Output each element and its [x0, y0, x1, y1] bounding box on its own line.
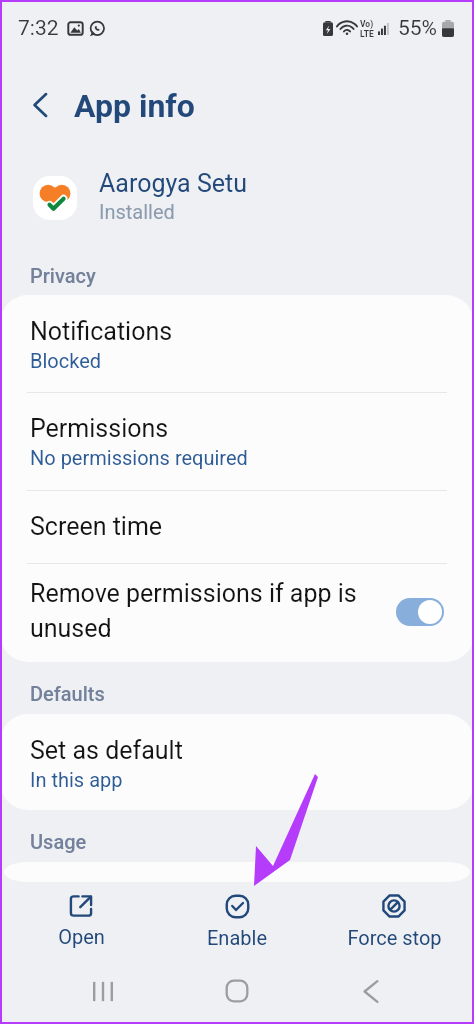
staticText: Screen time — [30, 512, 163, 541]
staticText: Blocked — [30, 349, 102, 372]
staticText: Notifications — [30, 317, 173, 346]
button[interactable]: Set as default — [0, 714, 474, 810]
staticText: Permissions — [30, 414, 169, 443]
button[interactable]: Permissions — [0, 393, 474, 490]
staticText: In this app — [30, 768, 123, 791]
staticText: Enable — [207, 926, 267, 949]
staticText: 55% — [398, 16, 437, 41]
button[interactable]: Screen time — [0, 491, 474, 563]
staticText: Set as default — [30, 736, 183, 765]
staticText: Defaults — [30, 682, 105, 705]
button[interactable]: Home — [206, 960, 268, 1022]
button[interactable]: Force stop — [318, 887, 470, 955]
staticText: Aarogya Setu — [99, 169, 247, 198]
staticText: Installed — [99, 200, 175, 223]
staticText: Privacy — [30, 264, 96, 287]
button[interactable]: Enable — [161, 888, 313, 955]
staticText: LTE — [360, 29, 374, 39]
staticText: Vo) — [360, 19, 374, 29]
staticText: No permissions required — [30, 446, 248, 469]
button[interactable]: Recent apps — [72, 960, 134, 1022]
staticText: Force stop — [347, 926, 442, 949]
button[interactable]: Back — [19, 86, 61, 124]
staticText: Usage — [30, 830, 87, 853]
button[interactable]: Back — [340, 960, 402, 1022]
staticText: App info — [74, 87, 195, 125]
button[interactable]: Remove permissions if app is unused — [0, 564, 474, 662]
button[interactable]: Notifications — [0, 295, 474, 392]
button[interactable]: Open — [5, 888, 157, 954]
staticText: Open — [58, 925, 105, 948]
staticText: Remove permissions if app is unused — [30, 579, 375, 643]
staticText: 7:32 — [18, 16, 59, 41]
